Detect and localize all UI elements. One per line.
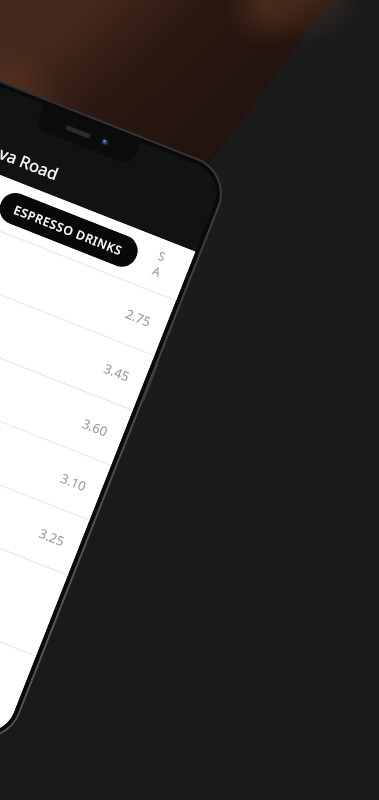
staticText: Flat White: [0, 331, 86, 432]
button[interactable]: ESPRESSO DRINKS: [0, 188, 142, 271]
button[interactable]: Flat White: [0, 306, 133, 465]
staticText: 3.60: [80, 414, 110, 440]
staticText: Americano: [0, 221, 130, 322]
staticText: 3.25: [36, 524, 67, 550]
staticText: Java Road: [0, 136, 62, 184]
button[interactable]: Cappuccino: [0, 251, 154, 410]
staticText: Cappuccino: [0, 276, 108, 377]
staticText: 2.75: [123, 304, 154, 331]
staticText: 3.10: [58, 469, 89, 495]
button[interactable]: SANDWICHES: [136, 236, 186, 297]
button[interactable]: Club Sandwich: [0, 471, 68, 656]
staticText: SANDWICHES: [149, 247, 174, 285]
staticText: 3.45: [101, 359, 132, 386]
button[interactable]: Cortado: [0, 416, 89, 575]
staticText: Macchiato: [0, 385, 65, 487]
button[interactable]: Americano: [0, 196, 176, 355]
staticText: ESPRESSO DRINKS: [12, 201, 126, 259]
button[interactable]: Open every day · Takeaway: [0, 552, 36, 709]
staticText: Cortado: [0, 440, 43, 542]
button[interactable]: Macchiato: [0, 361, 111, 520]
